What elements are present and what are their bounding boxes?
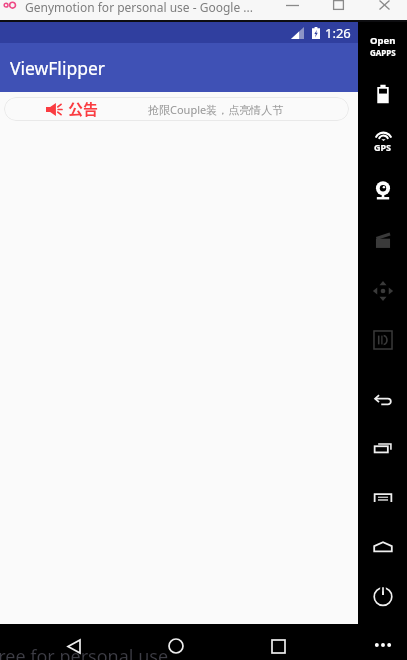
staticText: GPS (374, 141, 392, 153)
button[interactable]: Back (358, 389, 407, 411)
button[interactable]: Home (154, 630, 198, 660)
staticText: GAPPS (370, 47, 396, 56)
button[interactable]: Home (358, 536, 407, 558)
button[interactable]: Minimize (276, 0, 308, 20)
staticText: ViewFlipper (10, 56, 106, 80)
button[interactable]: Battery (358, 83, 407, 105)
button[interactable]: More (358, 634, 407, 656)
button[interactable]: GPS (358, 132, 407, 156)
button[interactable]: Open GApps (358, 34, 407, 56)
staticText: Open (370, 34, 396, 47)
button[interactable]: Back (52, 630, 96, 660)
button[interactable]: Camera (358, 179, 407, 201)
button[interactable]: Record screen (358, 229, 407, 251)
button[interactable]: 公告 (4, 97, 349, 121)
staticText: 抢限Couple装，点亮情人节 (148, 102, 284, 117)
staticText: free for personal use (0, 644, 169, 660)
button[interactable]: Close (368, 0, 400, 20)
button[interactable]: Power (358, 585, 407, 607)
staticText: 公告 (68, 98, 99, 120)
button[interactable]: Menu (358, 487, 407, 509)
staticText: Genymotion for personal use - Google ... (25, 0, 253, 15)
button[interactable]: Recent apps (256, 630, 300, 660)
button[interactable]: Maximize (322, 0, 354, 20)
staticText: 1:26 (325, 24, 351, 42)
button[interactable]: Accelerometer (358, 280, 407, 302)
button[interactable]: Identifiers (358, 329, 407, 351)
button[interactable]: Recent apps (358, 437, 407, 459)
